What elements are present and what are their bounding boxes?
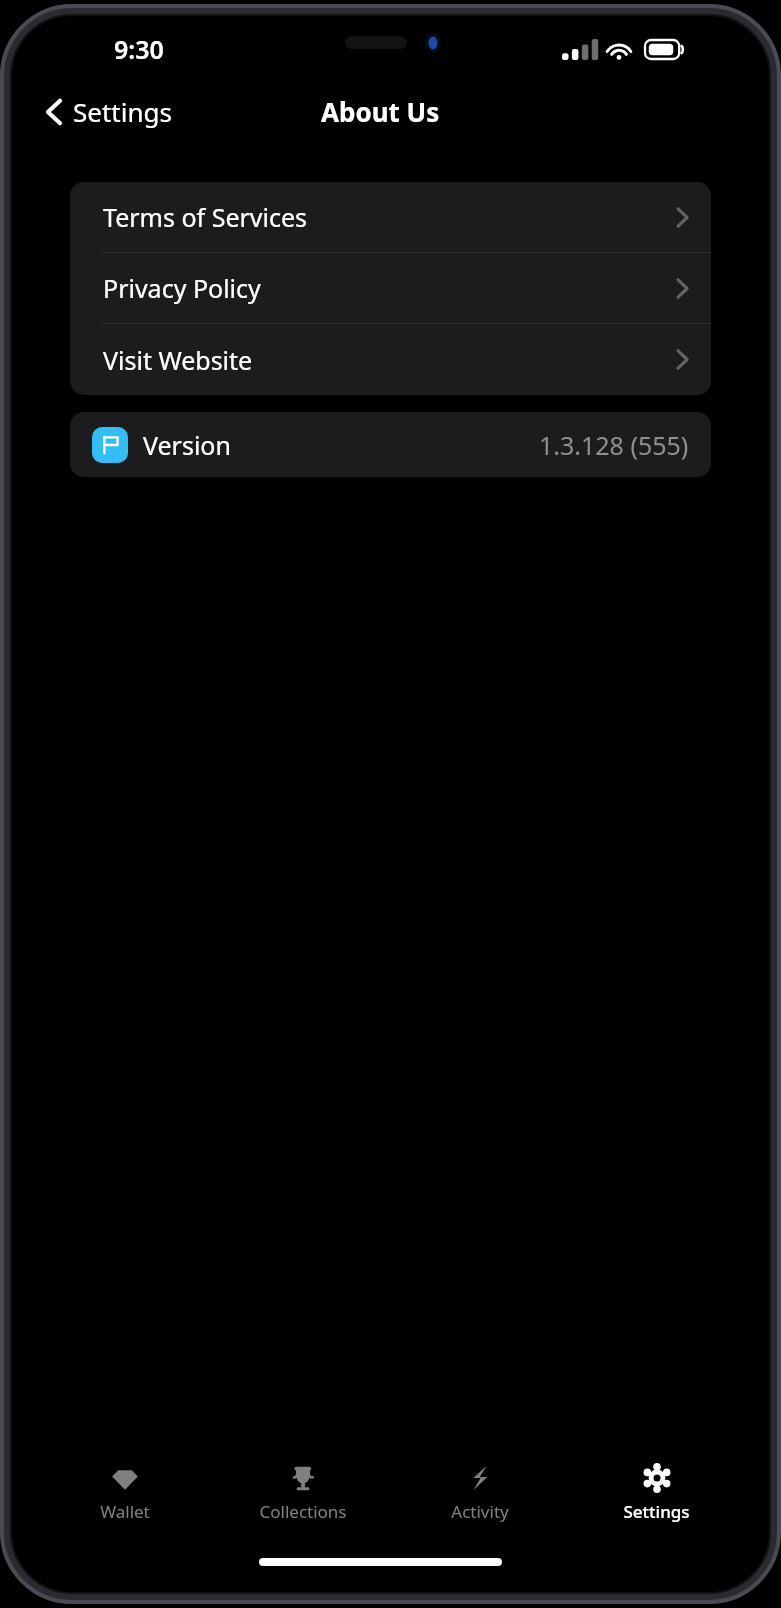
staticText: Visit Website [103,343,253,377]
staticText: Settings [623,1500,690,1523]
button[interactable]: Visit Website [70,324,711,395]
staticText: Activity [451,1500,509,1523]
staticText: 1.3.128 (555) [539,428,689,462]
button[interactable]: Terms of Services [70,182,711,253]
button[interactable]: Privacy Policy [70,253,711,324]
staticText: 9:30 [114,32,164,66]
staticText: Terms of Services [103,200,308,234]
button[interactable]: Wallet [36,1456,214,1530]
staticText: Version [143,428,231,462]
staticText: Settings [73,94,172,129]
button[interactable]: Activity [391,1456,568,1530]
staticText: Wallet [100,1500,150,1523]
staticText: About Us [321,94,440,129]
button[interactable]: Collections [214,1456,391,1530]
staticText: Privacy Policy [103,271,261,305]
staticText: Collections [259,1500,347,1523]
button[interactable]: Version [70,412,711,477]
button[interactable]: Settings [12,90,184,133]
button[interactable]: Settings [568,1456,745,1530]
